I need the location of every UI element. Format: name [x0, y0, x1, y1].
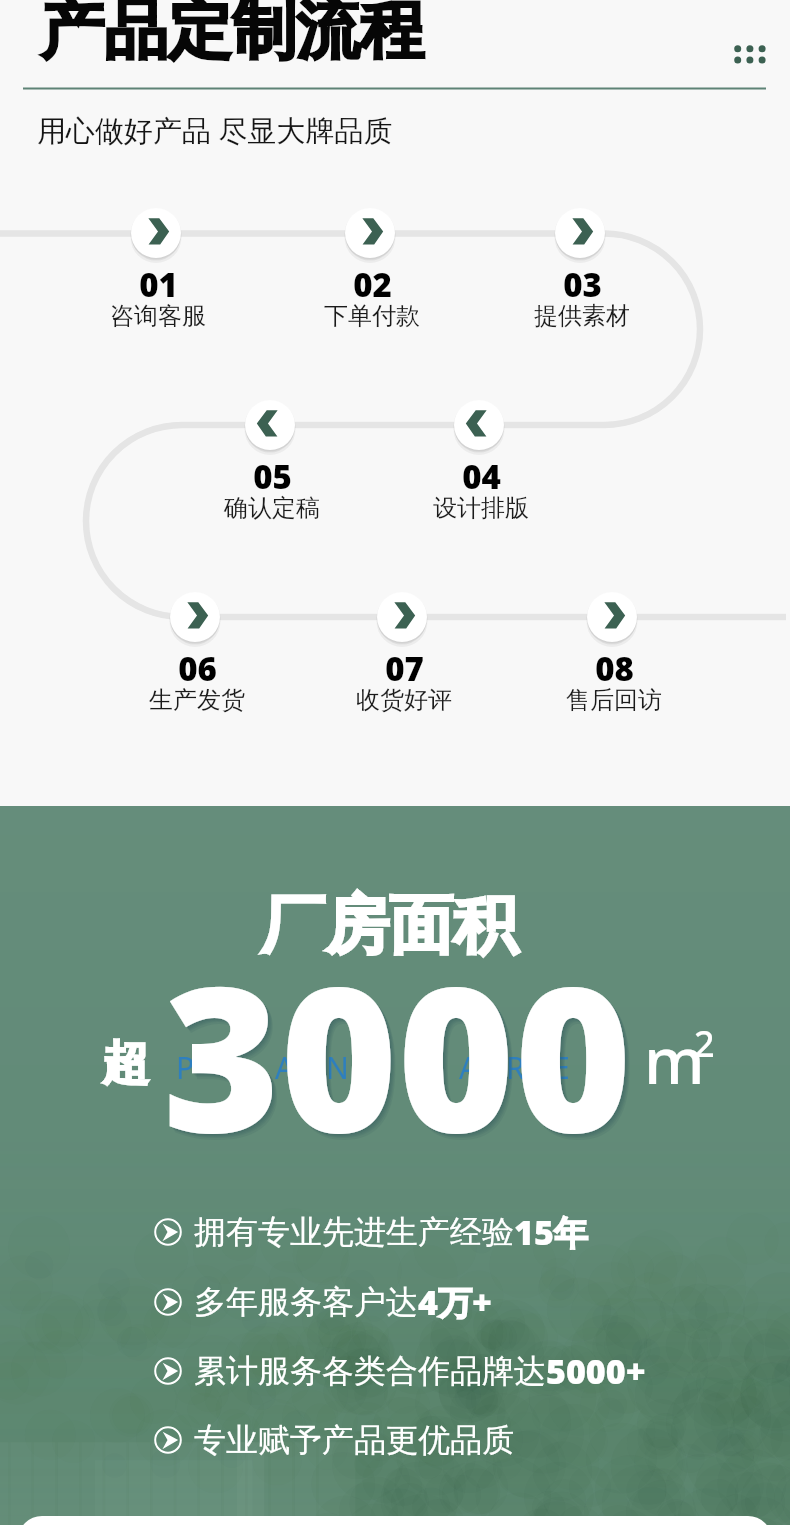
button[interactable]: Step 08 售后回访	[586, 591, 638, 643]
staticText: 06	[178, 646, 217, 691]
button[interactable]: Step 01 咨询客服	[130, 207, 182, 259]
staticText: 厂房面积	[261, 885, 517, 966]
staticText: 超	[102, 1034, 149, 1093]
button[interactable]: 专业赋予产品更优品质	[153, 1415, 514, 1465]
staticText: 08	[595, 646, 634, 691]
staticText: 2	[694, 1019, 715, 1068]
button[interactable]: Step 02 下单付款	[344, 207, 396, 259]
staticText: 确认定稿	[224, 493, 320, 523]
button[interactable]: Step 07 收货好评	[376, 591, 428, 643]
staticText: 累计服务各类合作品牌达	[194, 1351, 546, 1391]
staticText: 3000	[163, 918, 632, 1190]
staticText: 专业赋予产品更优品质	[194, 1420, 514, 1460]
staticText: 3000	[165, 920, 634, 1192]
staticText: 下单付款	[324, 301, 420, 331]
staticText: 产品定制流程	[40, 0, 424, 71]
staticText: 设计排版	[433, 493, 529, 523]
staticText: 3000	[168, 924, 637, 1196]
staticText: 03	[563, 262, 602, 307]
staticText: 5000+	[546, 1348, 646, 1394]
staticText: 提供素材	[534, 301, 630, 331]
staticText: T	[373, 1047, 390, 1088]
staticText: E	[553, 1047, 570, 1088]
button[interactable]: Step 06 生产发货	[169, 591, 221, 643]
staticText: m	[644, 1016, 705, 1103]
button[interactable]: 累计服务各类合作品牌达	[153, 1346, 646, 1396]
staticText: 04	[462, 454, 501, 499]
button[interactable]: More options	[722, 32, 778, 88]
staticText: 05	[253, 454, 292, 499]
staticText: 02	[353, 262, 392, 307]
button[interactable]: 拥有专业先进生产经验	[153, 1207, 588, 1257]
staticText: 15年	[514, 1209, 588, 1255]
staticText: N	[326, 1047, 349, 1088]
staticText: 3000	[164, 919, 633, 1191]
staticText: 4万+	[418, 1279, 492, 1325]
button[interactable]: 多年服务客户达	[153, 1277, 492, 1327]
staticText: 生产发货	[149, 685, 245, 715]
staticText: 01	[139, 262, 178, 307]
staticText: A	[459, 1047, 479, 1088]
staticText: 多年服务客户达	[194, 1282, 418, 1322]
staticText: R	[506, 1047, 525, 1088]
staticText: P	[176, 1047, 195, 1088]
staticText: 咨询客服	[110, 301, 206, 331]
button[interactable]: Step 03 提供素材	[554, 207, 606, 259]
staticText: 用心做好产品 尽显大牌品质	[37, 110, 393, 150]
staticText: 收货好评	[356, 685, 452, 715]
staticText: 3000	[167, 922, 636, 1194]
staticText: 拥有专业先进生产经验	[194, 1212, 514, 1252]
button[interactable]: Step 04 设计排版	[453, 399, 505, 451]
staticText: A	[275, 1047, 295, 1088]
staticText: L	[226, 1047, 242, 1088]
staticText: 07	[385, 646, 424, 691]
staticText: 售后回访	[566, 685, 662, 715]
staticText: 3000	[166, 921, 635, 1193]
button[interactable]: Step 05 确认定稿	[244, 399, 296, 451]
